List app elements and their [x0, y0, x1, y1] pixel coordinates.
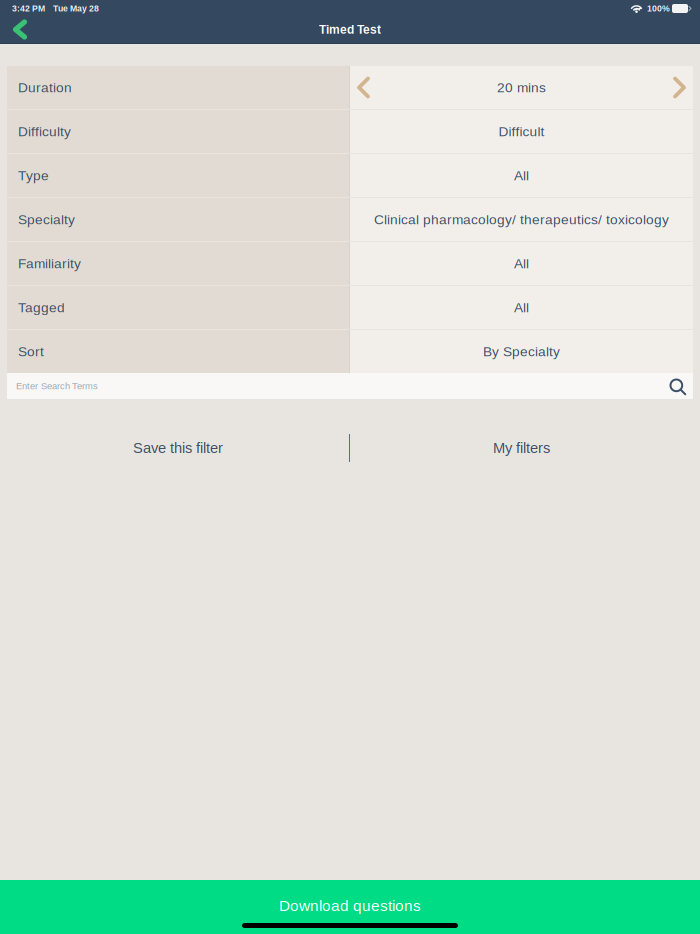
- staticText: My filters: [493, 440, 550, 456]
- staticText: Difficulty: [18, 124, 71, 139]
- button[interactable]: Save this filter: [7, 424, 349, 472]
- button[interactable]: All: [350, 286, 693, 329]
- button[interactable]: Difficulty: [7, 110, 349, 153]
- button[interactable]: Back: [0, 17, 40, 42]
- staticText: Familiarity: [18, 256, 81, 271]
- button[interactable]: Specialty: [7, 198, 349, 241]
- staticText: Sort: [18, 344, 44, 359]
- staticText: Timed Test: [319, 23, 381, 36]
- button[interactable]: Download questions: [0, 880, 700, 934]
- staticText: Tue May 28: [53, 4, 99, 13]
- button[interactable]: My filters: [350, 424, 693, 472]
- button[interactable]: All: [350, 154, 693, 197]
- staticText: Difficult: [498, 124, 544, 139]
- staticText: By Specialty: [483, 344, 560, 359]
- button[interactable]: Difficult: [350, 110, 693, 153]
- button[interactable]: Enter Search Terms: [7, 373, 693, 399]
- staticText: Type: [18, 168, 49, 183]
- staticText: All: [514, 256, 529, 271]
- button[interactable]: 20 mins: [350, 66, 693, 109]
- staticText: Enter Search Terms: [16, 381, 98, 391]
- staticText: Specialty: [18, 212, 75, 227]
- staticText: 100%: [647, 4, 670, 13]
- staticText: All: [514, 300, 529, 315]
- staticText: Duration: [18, 80, 72, 95]
- button[interactable]: Familiarity: [7, 242, 349, 285]
- button[interactable]: Clinical pharmacology/ therapeutics/ tox…: [350, 198, 693, 241]
- staticText: Tagged: [18, 300, 65, 315]
- staticText: Clinical pharmacology/ therapeutics/ tox…: [374, 212, 669, 227]
- button[interactable]: By Specialty: [350, 330, 693, 373]
- button[interactable]: Sort: [7, 330, 349, 373]
- staticText: 20 mins: [497, 80, 546, 95]
- staticText: 3:42 PM: [12, 4, 45, 13]
- button[interactable]: All: [350, 242, 693, 285]
- button[interactable]: Tagged: [7, 286, 349, 329]
- staticText: Download questions: [279, 897, 421, 914]
- button[interactable]: Duration: [7, 66, 349, 109]
- staticText: Save this filter: [133, 440, 223, 456]
- staticText: All: [514, 168, 529, 183]
- button[interactable]: Type: [7, 154, 349, 197]
